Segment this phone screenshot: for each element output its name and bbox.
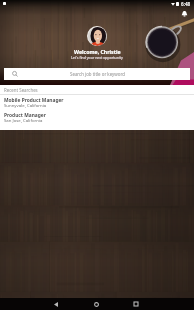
- staticText: Mobile Product Manager: [4, 97, 64, 104]
- button[interactable]: Back: [36, 298, 76, 310]
- staticText: Welcome, Christie: [74, 48, 121, 55]
- staticText: San Jose, California: [4, 117, 43, 123]
- staticText: Search job title or keyword: [70, 71, 125, 77]
- button[interactable]: Home: [76, 298, 116, 310]
- staticText: Product Manager: [4, 112, 46, 119]
- button[interactable]: Recents: [116, 298, 156, 310]
- staticText: Let's find your next opportunity: [71, 55, 123, 60]
- staticText: Sunnyvale, California: [4, 102, 47, 108]
- button[interactable]: Notifications: [179, 8, 189, 18]
- button[interactable]: Product Manager: [0, 110, 194, 125]
- button[interactable]: Search job title or keyword: [4, 68, 190, 80]
- button[interactable]: Profile: [87, 26, 107, 46]
- button[interactable]: Mobile Product Manager: [0, 95, 194, 110]
- staticText: Recent Searches: [4, 87, 38, 93]
- staticText: 6:48: [181, 1, 191, 7]
